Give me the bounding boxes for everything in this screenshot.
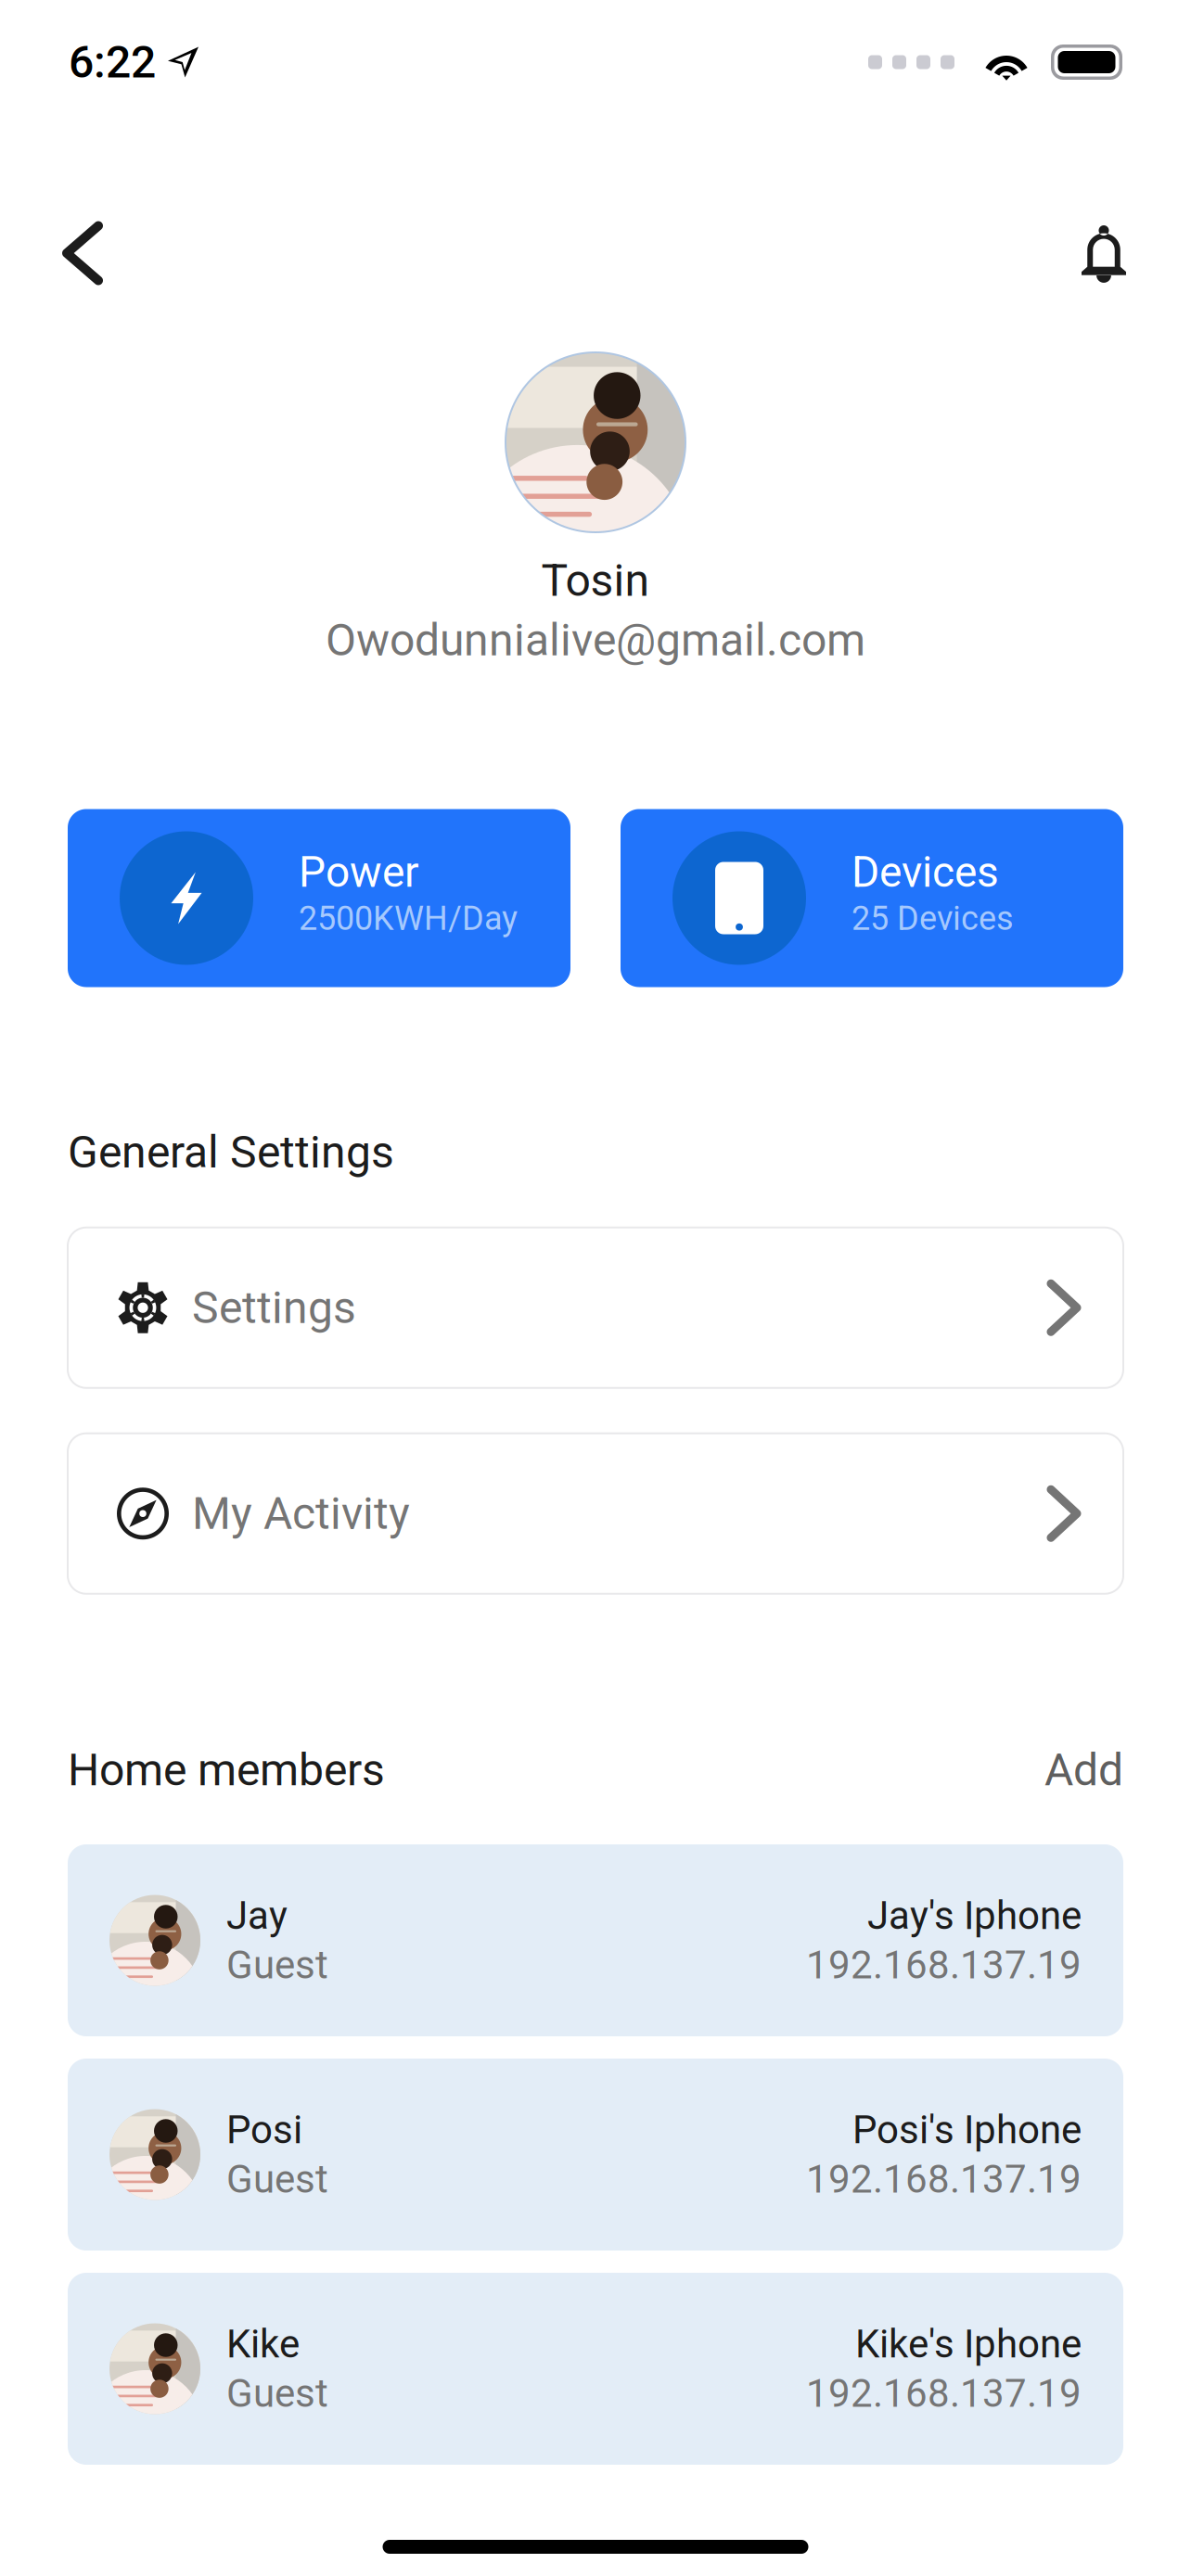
staticText: Guest [226,2371,328,2416]
button[interactable]: Settings [68,1228,1123,1388]
button[interactable]: Power [68,809,570,987]
button[interactable]: Jay [68,1844,1123,2036]
staticText: 6:22 [69,36,156,88]
staticText: 192.168.137.19 [806,2371,1082,2416]
staticText: 2500KWH/Day [299,899,518,938]
staticText: Home members [68,1744,385,1796]
staticText: Kike's Iphone [855,2321,1082,2367]
staticText: Kike [226,2321,300,2367]
staticText: Devices [852,847,999,897]
staticText: Settings [192,1282,356,1334]
staticText: General Settings [68,1126,394,1178]
button[interactable]: Back [48,209,117,297]
staticText: Add [1044,1744,1123,1796]
staticText: Guest [226,2156,328,2202]
button[interactable]: Posi [68,2059,1123,2251]
staticText: Owodunnialive@gmail.com [326,614,865,666]
staticText: Posi [226,2107,302,2153]
staticText: My Activity [192,1487,410,1540]
button[interactable]: Kike [68,2273,1123,2465]
staticText: Guest [226,1942,328,1988]
staticText: Posi's Iphone [852,2107,1082,2153]
button[interactable]: Devices [621,809,1123,987]
staticText: 192.168.137.19 [806,1942,1082,1988]
button[interactable]: My Activity [68,1433,1123,1594]
staticText: 192.168.137.19 [806,2156,1082,2202]
staticText: Tosin [541,555,650,607]
staticText: Jay's Iphone [867,1893,1082,1938]
staticText: Power [299,847,419,897]
staticText: Jay [226,1893,288,1938]
button[interactable]: Notifications [1065,209,1143,298]
staticText: 25 Devices [852,899,1014,938]
button[interactable]: Add [1044,1744,1123,1796]
